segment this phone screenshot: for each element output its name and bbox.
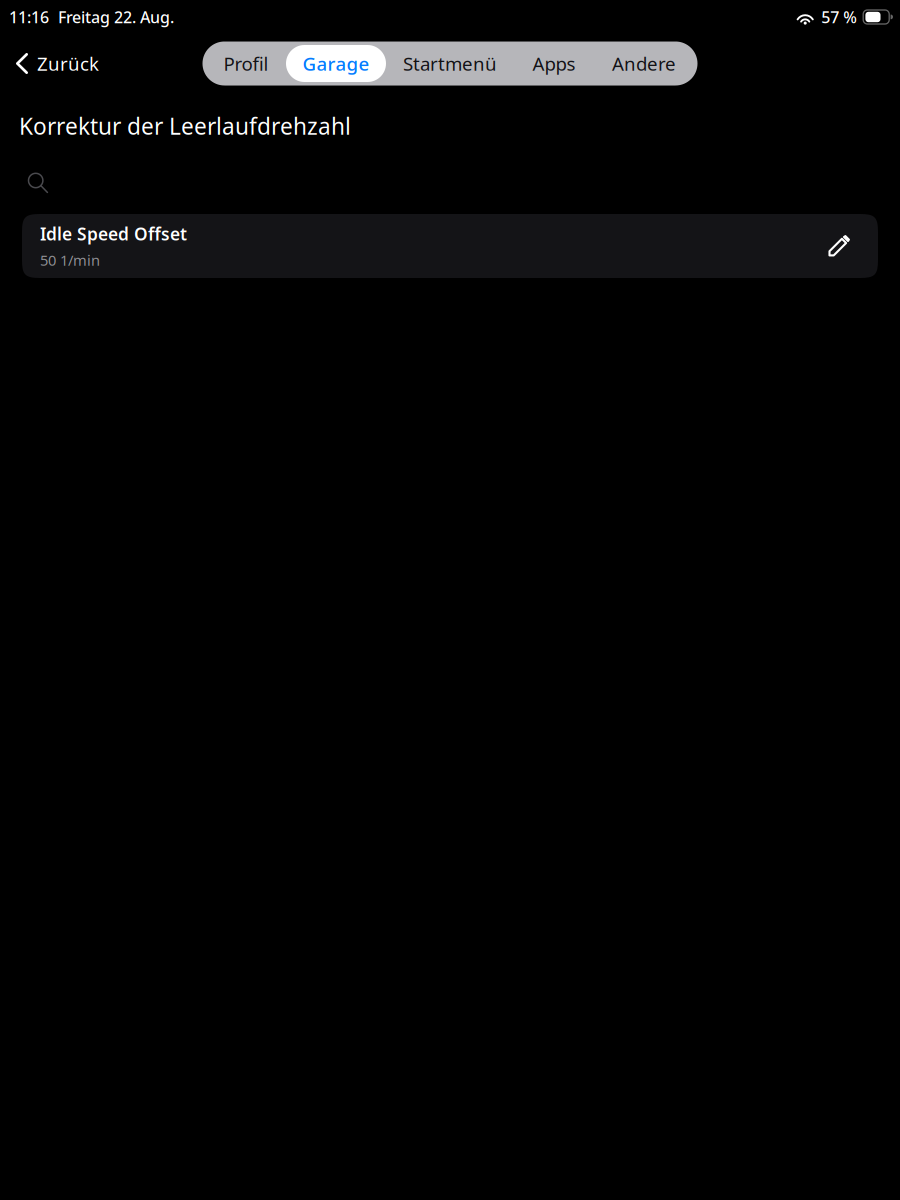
- staticText: 11:16: [9, 6, 49, 28]
- button[interactable]: Andere: [594, 45, 694, 82]
- staticText: Garage: [302, 51, 369, 76]
- button[interactable]: Startmenü: [386, 45, 514, 82]
- button[interactable]: Apps: [514, 45, 594, 82]
- staticText: Profil: [223, 51, 268, 76]
- staticText: Zurück: [37, 51, 99, 76]
- staticText: Apps: [532, 51, 575, 76]
- button[interactable]: Profil: [206, 45, 286, 82]
- staticText: Freitag 22. Aug.: [58, 6, 174, 28]
- staticText: 57 %: [821, 6, 857, 28]
- staticText: Korrektur der Leerlaufdrehzahl: [19, 111, 351, 141]
- staticText: 50 1/min: [40, 250, 100, 270]
- button[interactable]: Zurück: [0, 41, 115, 85]
- button[interactable]: Garage: [286, 45, 386, 82]
- staticText: Andere: [612, 51, 676, 76]
- button[interactable]: Idle Speed Offset: [22, 214, 878, 278]
- staticText: Idle Speed Offset: [40, 222, 187, 245]
- staticText: Startmenü: [403, 51, 497, 76]
- button[interactable]: Suchen: [0, 166, 900, 200]
